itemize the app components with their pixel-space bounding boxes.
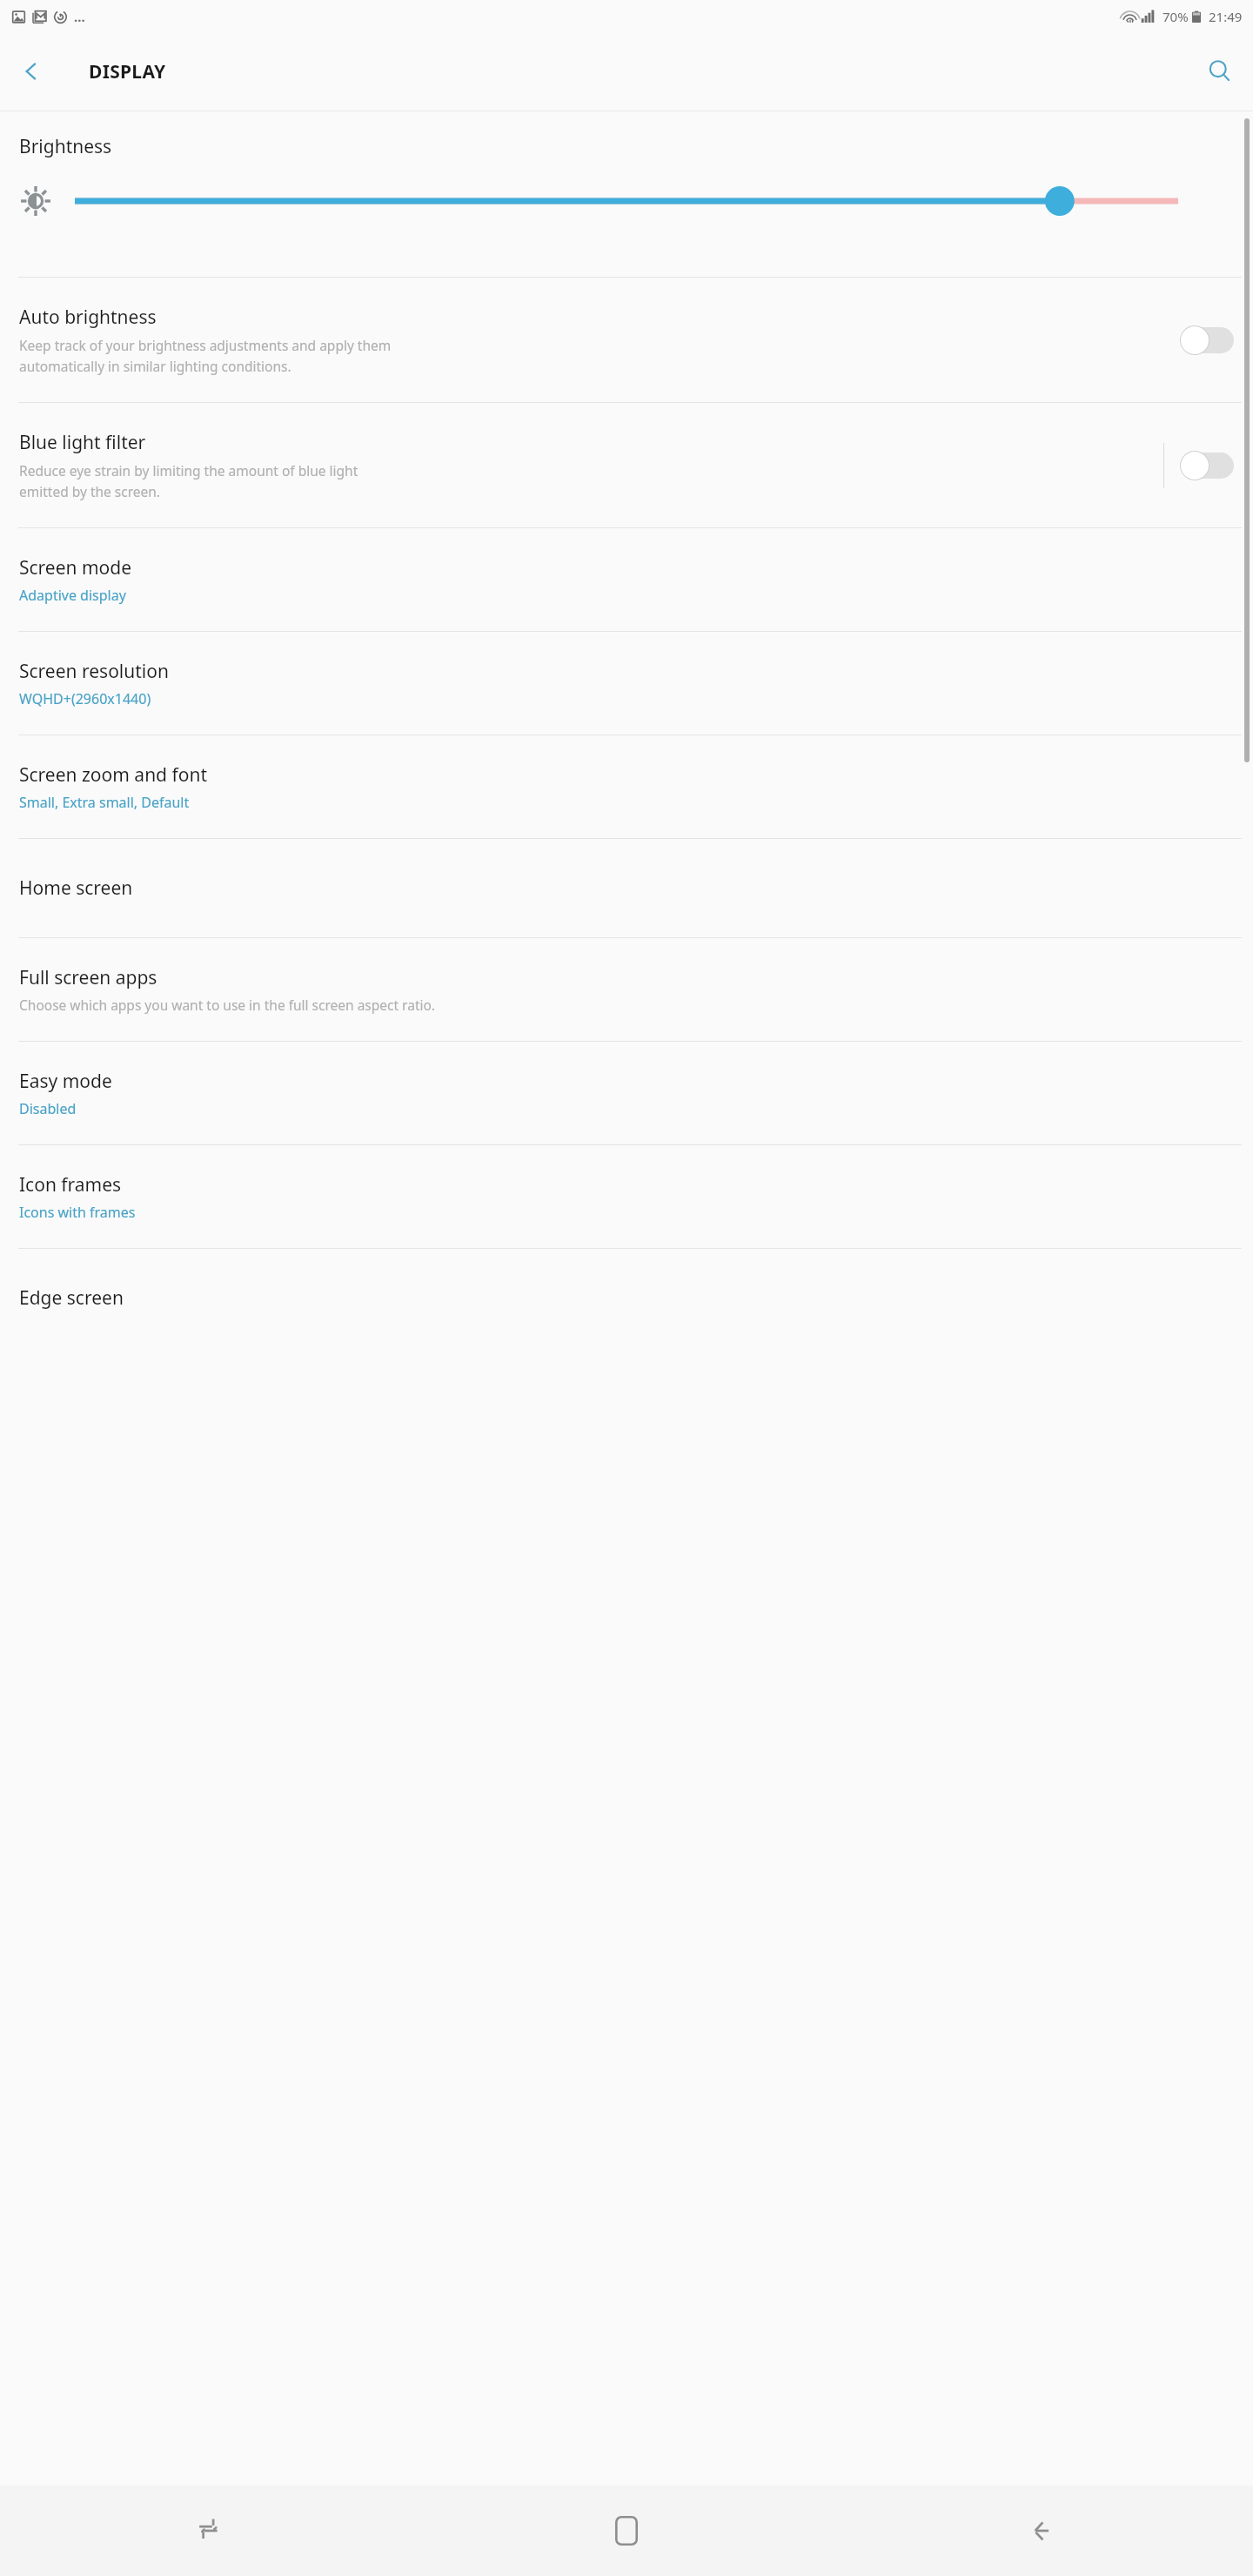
button[interactable]: Screen zoom and font [0,735,1253,838]
button[interactable]: Search [1196,47,1244,96]
button[interactable]: Blue light filter toggle [1180,445,1234,486]
button[interactable]: Screen mode [0,528,1253,631]
staticText: 21:49 [1209,8,1243,25]
staticText: Screen zoom and font [19,762,207,788]
button[interactable]: Full screen apps [0,938,1253,1041]
staticText: Disabled [19,1099,77,1118]
button[interactable] [75,182,1185,220]
staticText: DISPLAY [89,59,166,84]
staticText: Keep track of your brightness adjustment… [19,336,392,375]
staticText: ... [74,8,85,25]
button[interactable]: Screen resolution [0,632,1253,735]
staticText: Easy mode [19,1069,112,1094]
staticText: Blue light filter [19,430,146,455]
staticText: Full screen apps [19,965,157,990]
button[interactable]: Edge screen [0,1249,1253,1347]
staticText: Adaptive display [19,586,126,605]
staticText: Screen resolution [19,659,169,684]
staticText: Edge screen [19,1285,124,1311]
button[interactable]: Home [418,2485,835,2576]
button[interactable]: Easy mode [0,1042,1253,1144]
button[interactable]: Blue light filter [0,403,1253,527]
staticText: Choose which apps you want to use in the… [19,996,436,1014]
staticText: Home screen [19,875,133,901]
button[interactable]: Auto brightness [0,278,1253,402]
button[interactable]: Icon frames [0,1145,1253,1248]
staticText: Icons with frames [19,1203,136,1222]
button[interactable]: Recents [0,2485,418,2576]
staticText: Brightness [19,134,112,159]
button[interactable]: Back [7,47,56,96]
staticText: Small, Extra small, Default [19,793,190,812]
button[interactable]: Auto brightness toggle [1180,319,1234,361]
staticText: Reduce eye strain by limiting the amount… [19,461,358,500]
staticText: Auto brightness [19,305,157,330]
staticText: WQHD+(2960x1440) [19,689,151,708]
button[interactable]: Back [835,2485,1253,2576]
staticText: Icon frames [19,1172,122,1197]
button[interactable]: Home screen [0,839,1253,937]
staticText: Screen mode [19,555,132,580]
staticText: 70% [1163,8,1189,25]
